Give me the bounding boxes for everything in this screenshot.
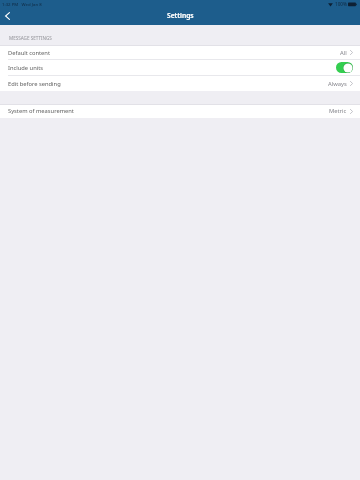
staticText: Edit before sending	[8, 80, 61, 88]
staticText: Default content	[8, 49, 50, 57]
button[interactable]: Back	[0, 9, 15, 24]
button[interactable]: Include units	[0, 60, 360, 76]
button[interactable]: Edit before sending	[0, 76, 360, 91]
button[interactable]: Include units toggle	[336, 62, 353, 73]
staticText: 100%	[335, 1, 347, 7]
staticText: All	[340, 49, 347, 57]
staticText: System of measurement	[8, 107, 74, 115]
button[interactable]: Default content	[0, 45, 360, 60]
button[interactable]: System of measurement	[0, 104, 360, 118]
staticText: Settings	[167, 11, 194, 20]
staticText: Always	[328, 80, 347, 88]
staticText: 1:32 PM Wed Jan 8	[2, 1, 42, 7]
staticText: Include units	[8, 64, 43, 72]
staticText: MESSAGE SETTINGS	[9, 35, 52, 41]
staticText: Metric	[329, 107, 347, 115]
